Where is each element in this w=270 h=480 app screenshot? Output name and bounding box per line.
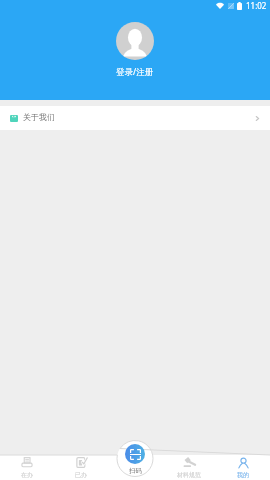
button[interactable]: 扫码	[125, 444, 145, 464]
staticText: 我的	[237, 471, 249, 479]
button[interactable]: 材料规范	[162, 454, 216, 480]
staticText: 关于我们	[23, 112, 55, 122]
button[interactable]: 已办	[54, 454, 108, 480]
staticText: 在办	[21, 471, 33, 479]
staticText: 扫码	[129, 467, 142, 475]
button[interactable]: 我的	[216, 454, 270, 480]
staticText: 已办	[75, 471, 87, 479]
staticText: 11:02	[246, 0, 267, 11]
staticText: 登录/注册	[116, 66, 154, 78]
staticText: 材料规范	[177, 471, 201, 479]
button[interactable]: 在办	[0, 454, 54, 480]
button[interactable]: 关于我们	[0, 106, 270, 130]
